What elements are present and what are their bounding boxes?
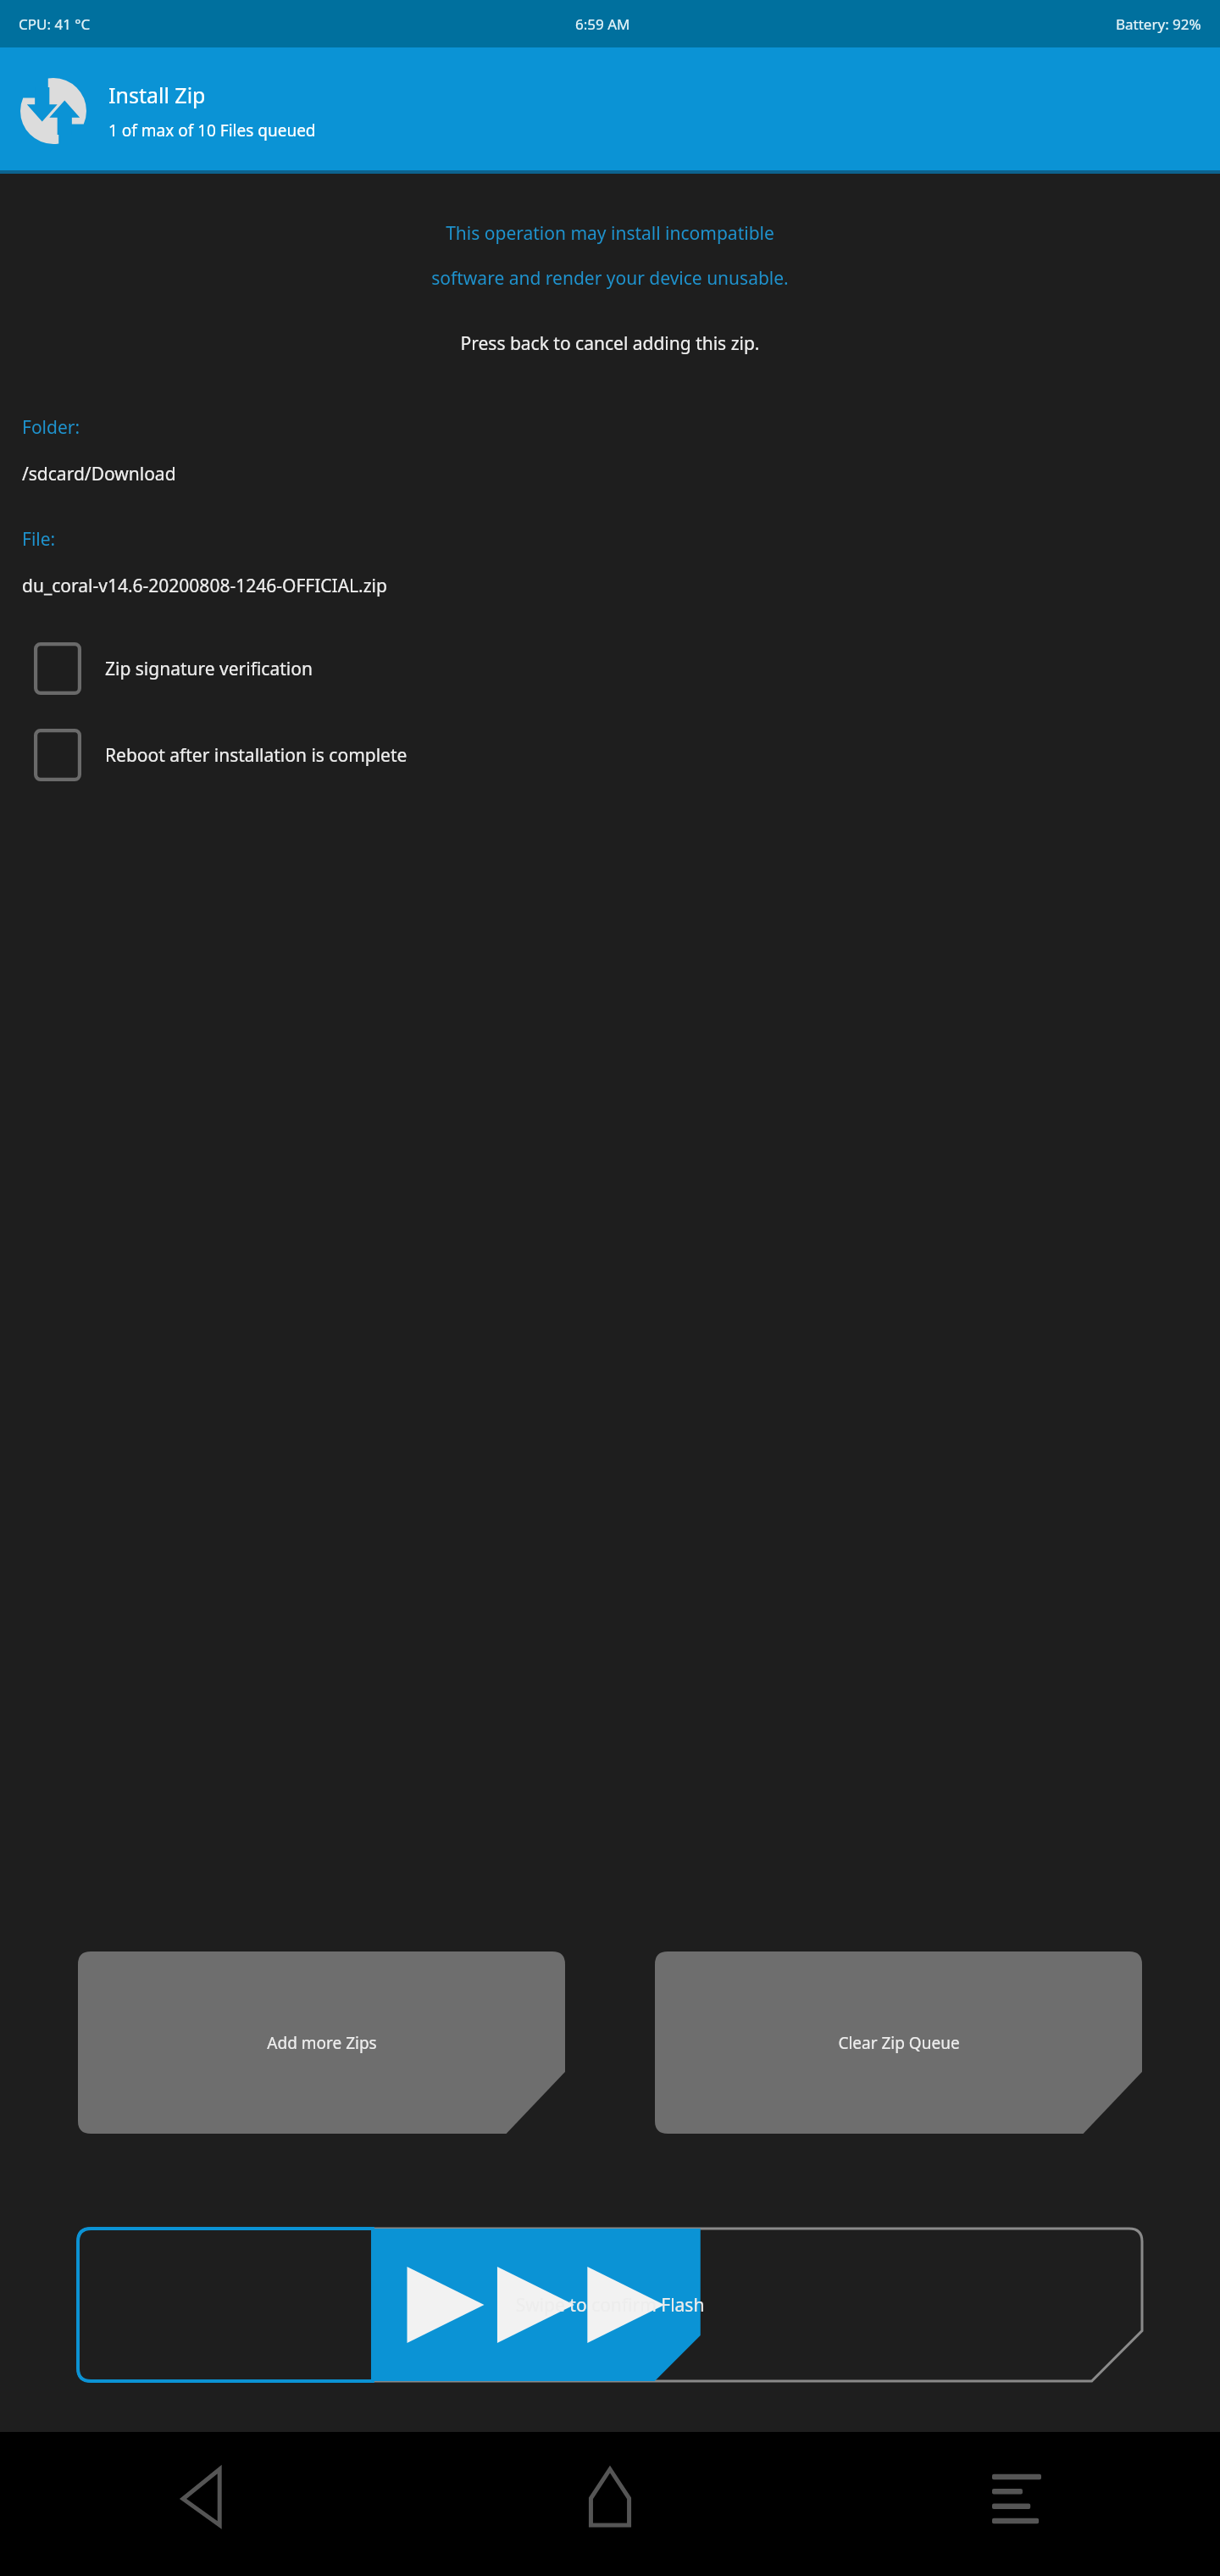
button[interactable]: Swipe to confirm Flash: [78, 2229, 1142, 2381]
staticText: /sdcard/Download: [22, 462, 176, 486]
staticText: Reboot after installation is complete: [105, 743, 408, 768]
staticText: Install Zip: [108, 80, 206, 109]
staticText: Folder:: [22, 415, 80, 440]
staticText: File:: [22, 527, 56, 552]
staticText: Add more Zips: [267, 2032, 377, 2054]
staticText: Press back to cancel adding this zip.: [0, 331, 1220, 356]
button[interactable]: Home: [407, 2432, 813, 2576]
staticText: Swipe to confirm Flash: [78, 2293, 1142, 2318]
staticText: 6:59 AM: [575, 14, 630, 34]
button[interactable]: Back: [0, 2432, 407, 2576]
staticText: CPU: 41 °C: [19, 14, 91, 34]
button[interactable]: Menu: [813, 2432, 1220, 2576]
button[interactable]: Clear Zip Queue: [655, 1951, 1142, 2134]
staticText: Battery: 92%: [1116, 14, 1201, 34]
staticText: du_coral-v14.6-20200808-1246-OFFICIAL.zi…: [22, 574, 387, 598]
staticText: 1 of max of 10 Files queued: [108, 119, 316, 142]
button[interactable]: Add more Zips: [78, 1951, 565, 2134]
staticText: This operation may install incompatible: [0, 221, 1220, 246]
staticText: Zip signature verification: [105, 657, 313, 681]
button[interactable]: Zip signature verification: [0, 637, 1220, 700]
staticText: software and render your device unusable…: [0, 266, 1220, 291]
staticText: Clear Zip Queue: [838, 2032, 960, 2054]
button[interactable]: Reboot after installation is complete: [0, 724, 1220, 786]
